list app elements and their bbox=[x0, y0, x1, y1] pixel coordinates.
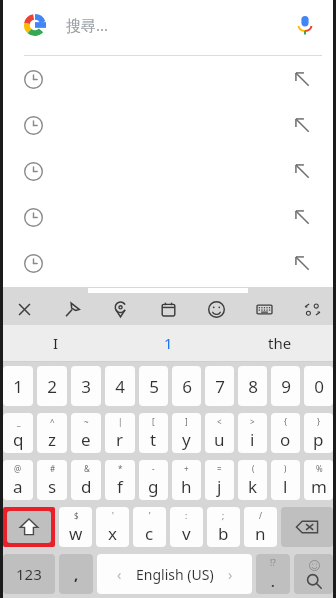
staticText: ’ bbox=[149, 510, 151, 521]
button[interactable]: the bbox=[224, 325, 336, 361]
button[interactable]: # bbox=[37, 460, 67, 500]
staticText: q bbox=[13, 428, 24, 451]
button[interactable]: Calendar bbox=[144, 293, 192, 325]
button[interactable]: Keyboard bbox=[240, 293, 288, 325]
staticText: y bbox=[182, 428, 191, 451]
button[interactable]: [ bbox=[139, 413, 168, 453]
button[interactable]: ‹ bbox=[97, 554, 252, 594]
button[interactable]: 8 bbox=[238, 366, 267, 406]
staticText: 1 bbox=[13, 375, 23, 398]
button[interactable]: , bbox=[59, 554, 93, 594]
button[interactable]: _ bbox=[3, 413, 33, 453]
staticText: c bbox=[145, 522, 154, 545]
button[interactable]: 0 bbox=[304, 366, 333, 406]
button[interactable]: % bbox=[304, 460, 333, 500]
button[interactable]: 123 bbox=[3, 554, 55, 594]
staticText: + bbox=[184, 463, 189, 474]
staticText: g bbox=[148, 475, 159, 498]
staticText: d bbox=[81, 475, 92, 498]
button[interactable]: Shift bbox=[7, 511, 51, 543]
button[interactable]: Search bbox=[294, 554, 333, 594]
button[interactable]: Voice search bbox=[288, 8, 322, 42]
staticText: = bbox=[217, 463, 222, 474]
staticText: 2 bbox=[47, 375, 57, 398]
button[interactable]: I bbox=[0, 325, 112, 361]
button[interactable]: Pin bbox=[48, 293, 96, 325]
button[interactable] bbox=[0, 102, 336, 148]
button[interactable]: Period bbox=[256, 554, 290, 594]
staticText: ' bbox=[112, 510, 114, 521]
button[interactable]: ) bbox=[271, 460, 300, 500]
staticText: u bbox=[214, 428, 225, 451]
staticText: j bbox=[217, 475, 222, 498]
staticText: z bbox=[48, 428, 56, 451]
button[interactable]: { bbox=[271, 413, 300, 453]
button[interactable]: } bbox=[304, 413, 333, 453]
button[interactable]: Close bbox=[0, 293, 48, 325]
staticText: ~ bbox=[84, 416, 89, 427]
staticText: t bbox=[150, 428, 157, 451]
button[interactable]: Translate bbox=[288, 293, 336, 325]
button[interactable] bbox=[0, 194, 336, 240]
staticText: o bbox=[280, 428, 291, 451]
staticText: !? bbox=[270, 557, 276, 568]
button[interactable]: ( bbox=[238, 460, 267, 500]
staticText: i bbox=[250, 428, 255, 451]
staticText: / bbox=[259, 510, 262, 521]
button[interactable]: 4 bbox=[105, 366, 135, 406]
button[interactable]: 2 bbox=[37, 366, 67, 406]
staticText: 7 bbox=[215, 375, 225, 398]
button[interactable]: 7 bbox=[205, 366, 234, 406]
staticText: 4 bbox=[115, 375, 125, 398]
button[interactable]: Emoji bbox=[192, 293, 240, 325]
button[interactable]: 3 bbox=[71, 366, 101, 406]
staticText: r bbox=[116, 428, 124, 451]
button[interactable]: / bbox=[244, 507, 277, 547]
staticText: ‹ bbox=[117, 565, 122, 584]
staticText: ) bbox=[284, 463, 287, 474]
button[interactable]: ’ bbox=[133, 507, 166, 547]
button[interactable]: @ bbox=[3, 460, 33, 500]
button[interactable]: 1 bbox=[3, 366, 33, 406]
button[interactable]: * bbox=[105, 460, 135, 500]
button[interactable]: ] bbox=[172, 413, 201, 453]
button[interactable]: > bbox=[238, 413, 267, 453]
staticText: { bbox=[284, 416, 288, 427]
staticText: @ bbox=[14, 463, 22, 474]
button[interactable]: $ bbox=[59, 507, 92, 547]
button[interactable]: & bbox=[71, 460, 101, 500]
button[interactable]: ^ bbox=[37, 413, 67, 453]
button[interactable]: Google bbox=[22, 12, 48, 38]
staticText: - bbox=[152, 463, 155, 474]
staticText: l bbox=[283, 475, 288, 498]
button[interactable]: ; bbox=[207, 507, 240, 547]
button[interactable] bbox=[0, 240, 336, 286]
staticText: $ bbox=[74, 510, 79, 521]
button[interactable]: Backspace bbox=[281, 507, 333, 547]
button[interactable]: 9 bbox=[271, 366, 300, 406]
staticText: ] bbox=[185, 416, 188, 427]
button[interactable]: | bbox=[105, 413, 135, 453]
button[interactable]: - bbox=[139, 460, 168, 500]
button[interactable]: ' bbox=[96, 507, 129, 547]
button[interactable] bbox=[0, 56, 336, 102]
button[interactable]: 5 bbox=[139, 366, 168, 406]
staticText: _ bbox=[17, 416, 21, 427]
staticText: e bbox=[81, 428, 91, 451]
button[interactable]: : bbox=[170, 507, 203, 547]
button[interactable]: < bbox=[205, 413, 234, 453]
button[interactable]: 1 bbox=[112, 325, 224, 361]
staticText: 搜尋... bbox=[66, 15, 109, 35]
staticText: › bbox=[228, 565, 233, 584]
button[interactable]: ~ bbox=[71, 413, 101, 453]
staticText: 1 bbox=[164, 333, 173, 353]
button[interactable]: + bbox=[172, 460, 201, 500]
staticText: & bbox=[84, 463, 90, 474]
staticText: I bbox=[53, 333, 59, 353]
button[interactable]: Location bbox=[96, 293, 144, 325]
button[interactable]: = bbox=[205, 460, 234, 500]
button[interactable]: 6 bbox=[172, 366, 201, 406]
button[interactable] bbox=[0, 148, 336, 194]
staticText: x bbox=[108, 522, 117, 545]
staticText: 9 bbox=[281, 375, 291, 398]
